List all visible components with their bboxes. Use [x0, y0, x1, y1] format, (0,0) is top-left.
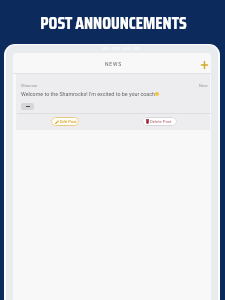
- button[interactable]: Delete Post: [142, 117, 177, 126]
- staticText: Edit Post: [60, 119, 77, 124]
- button[interactable]: Attachment: [21, 103, 34, 110]
- button[interactable]: Edit Post: [51, 117, 79, 126]
- staticText: NEWS: [105, 61, 123, 67]
- staticText: Shannon: [21, 83, 38, 88]
- staticText: Now: [199, 83, 208, 88]
- staticText: Welcome to the Shamrocks! I'm excited to…: [21, 91, 157, 97]
- button[interactable]: Create announcement: [198, 59, 210, 71]
- staticText: POST ANNOUNCEMENTS: [40, 9, 187, 36]
- staticText: Delete Post: [150, 119, 172, 124]
